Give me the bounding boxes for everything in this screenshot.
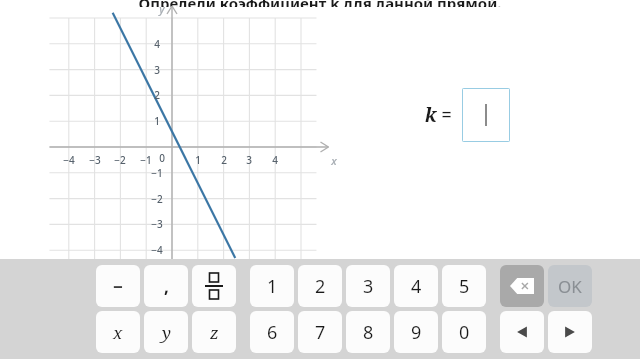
button[interactable]: OK xyxy=(548,265,592,307)
button[interactable]: Backspace xyxy=(500,265,544,307)
staticText: 6 xyxy=(267,320,278,345)
staticText: −4 xyxy=(63,153,75,167)
staticText: 5 xyxy=(459,274,470,299)
button[interactable]: Move cursor left xyxy=(500,311,544,353)
staticText: 4 xyxy=(272,153,278,167)
button[interactable]: 0 xyxy=(442,311,486,353)
staticText: −4 xyxy=(151,243,163,257)
staticText: −2 xyxy=(114,153,126,167)
button[interactable]: 6 xyxy=(250,311,294,353)
button[interactable]: 2 xyxy=(298,265,342,307)
button[interactable]: 9 xyxy=(394,311,438,353)
button[interactable]: Fraction xyxy=(192,265,236,307)
staticText: −2 xyxy=(151,192,163,206)
button[interactable]: 7 xyxy=(298,311,342,353)
staticText: OK xyxy=(558,275,582,298)
staticText: 4 xyxy=(154,37,160,51)
staticText: 3 xyxy=(154,63,160,77)
staticText: 1 xyxy=(195,153,201,167)
staticText: y xyxy=(159,1,165,16)
staticText: −3 xyxy=(89,153,101,167)
staticText: 7 xyxy=(315,320,326,345)
staticText: y xyxy=(162,321,171,344)
button[interactable]: − xyxy=(96,265,140,307)
staticText: 3 xyxy=(363,274,374,299)
staticText: 3 xyxy=(246,153,252,167)
staticText: , xyxy=(164,275,169,298)
staticText: 8 xyxy=(363,320,374,345)
staticText: x xyxy=(331,153,337,168)
staticText: 1 xyxy=(154,114,160,128)
staticText: −1 xyxy=(151,166,163,180)
button[interactable]: 5 xyxy=(442,265,486,307)
button[interactable]: y xyxy=(144,311,188,353)
button[interactable]: z xyxy=(192,311,236,353)
staticText: 2 xyxy=(221,153,227,167)
staticText: 4 xyxy=(411,274,422,299)
button[interactable]: 3 xyxy=(346,265,390,307)
staticText: z xyxy=(210,321,219,344)
staticText: 0 xyxy=(159,151,165,165)
staticText: 2 xyxy=(154,88,160,102)
button[interactable]: 1 xyxy=(250,265,294,307)
staticText: −3 xyxy=(151,217,163,231)
button[interactable] xyxy=(462,88,510,142)
staticText: k = xyxy=(425,102,452,128)
button[interactable]: x xyxy=(96,311,140,353)
staticText: − xyxy=(113,275,123,298)
staticText: 2 xyxy=(315,274,326,299)
button[interactable]: 4 xyxy=(394,265,438,307)
button[interactable]: , xyxy=(144,265,188,307)
staticText: Определи коэффициент k для данной прямой… xyxy=(138,0,502,7)
button[interactable]: Move cursor right xyxy=(548,311,592,353)
staticText: x xyxy=(113,321,123,344)
staticText: 1 xyxy=(267,274,278,299)
staticText: −1 xyxy=(140,153,152,167)
staticText: 9 xyxy=(411,320,422,345)
staticText: 0 xyxy=(459,320,470,345)
button[interactable]: 8 xyxy=(346,311,390,353)
